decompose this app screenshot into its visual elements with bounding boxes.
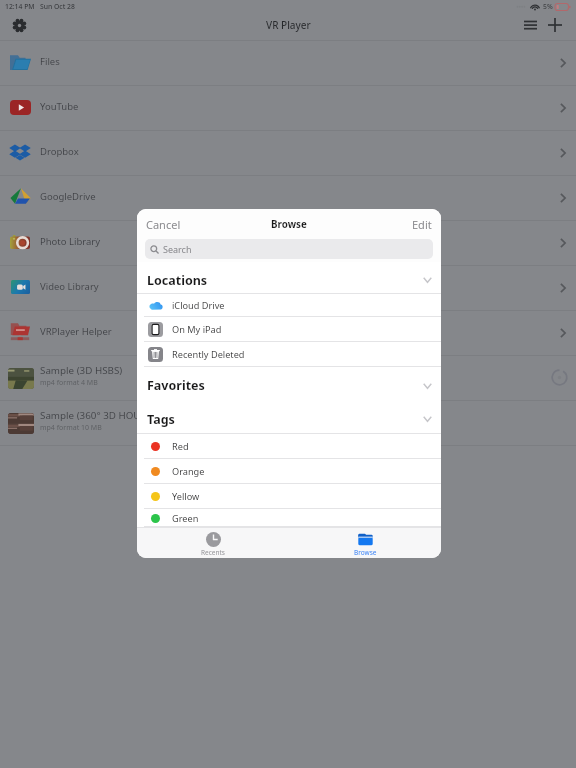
staticText: Tags xyxy=(147,411,175,428)
button[interactable]: Red xyxy=(137,434,441,459)
staticText: Sun Oct 28 xyxy=(40,2,75,11)
staticText: Photo Library xyxy=(40,235,101,248)
button[interactable]: Menu xyxy=(518,13,542,37)
staticText: Browse xyxy=(271,218,307,231)
staticText: YouTube xyxy=(40,100,79,113)
staticText: Recents xyxy=(201,548,225,557)
button[interactable]: Orange xyxy=(137,459,441,484)
staticText: Sample (360° 3D HOU xyxy=(40,409,141,422)
staticText: Cancel xyxy=(146,217,181,232)
button[interactable]: Search xyxy=(145,239,433,259)
staticText: Yellow xyxy=(172,490,200,503)
staticText: mp4 format 10 MB xyxy=(40,423,102,433)
button[interactable]: iCloud Drive xyxy=(137,294,441,317)
button[interactable]: Yellow xyxy=(137,484,441,509)
button[interactable]: Sample (360° 3D HOU xyxy=(0,401,576,446)
staticText: Dropbox xyxy=(40,145,79,158)
button[interactable]: Browse xyxy=(289,528,441,557)
staticText: Green xyxy=(172,512,199,525)
button[interactable]: Cancel xyxy=(144,214,183,235)
button[interactable]: Locations xyxy=(137,262,441,294)
staticText: Files xyxy=(40,55,60,68)
staticText: 5% xyxy=(543,2,553,11)
button[interactable]: Recently Deleted xyxy=(137,342,441,367)
staticText: Sample (3D HSBS) xyxy=(40,364,123,377)
staticText: Recently Deleted xyxy=(172,348,245,361)
staticText: Favorites xyxy=(147,377,205,394)
button[interactable]: Favorites xyxy=(137,367,441,400)
staticText: GoogleDrive xyxy=(40,190,96,203)
button[interactable]: On My iPad xyxy=(137,317,441,342)
button[interactable]: Sample (3D HSBS) xyxy=(0,356,576,401)
button[interactable]: Video Library xyxy=(0,266,576,311)
staticText: Edit xyxy=(412,217,432,232)
button[interactable]: Add xyxy=(543,13,567,37)
staticText: Browse xyxy=(354,548,377,557)
staticText: Orange xyxy=(172,465,205,478)
button[interactable]: Settings xyxy=(8,14,30,36)
staticText: mp4 format 4 MB xyxy=(40,378,98,388)
button[interactable]: Files xyxy=(0,41,576,86)
staticText: VR Player xyxy=(266,18,311,32)
button[interactable]: YouTube xyxy=(0,86,576,131)
staticText: Search xyxy=(163,243,192,255)
staticText: VRPlayer Helper xyxy=(40,325,112,338)
staticText: On My iPad xyxy=(172,323,222,336)
staticText: Red xyxy=(172,440,189,453)
button[interactable]: Edit xyxy=(410,214,434,235)
staticText: Locations xyxy=(147,272,208,289)
button[interactable]: GoogleDrive xyxy=(0,176,576,221)
staticText: 12:14 PM xyxy=(5,2,35,11)
button[interactable]: Recents xyxy=(137,528,289,557)
button[interactable]: Photo Library xyxy=(0,221,576,266)
button[interactable]: Green xyxy=(137,509,441,527)
button[interactable]: VRPlayer Helper xyxy=(0,311,576,356)
button[interactable]: Dropbox xyxy=(0,131,576,176)
staticText: Video Library xyxy=(40,280,99,293)
button[interactable]: Tags xyxy=(137,400,441,434)
staticText: iCloud Drive xyxy=(172,299,225,312)
